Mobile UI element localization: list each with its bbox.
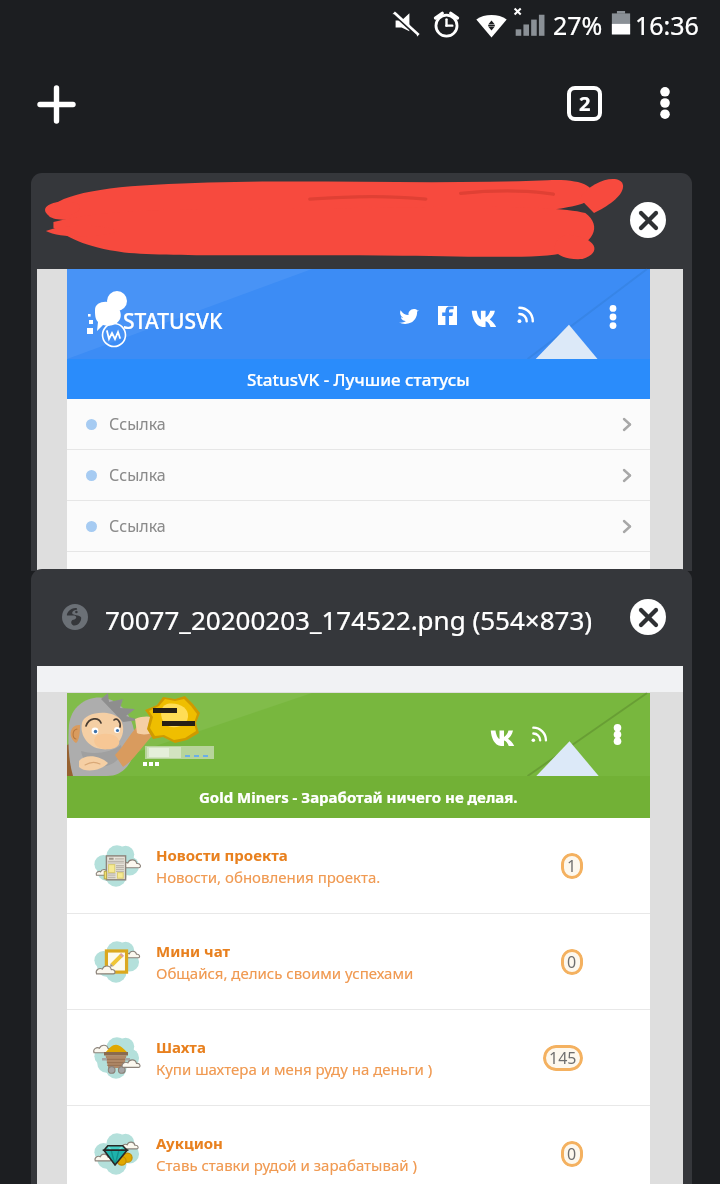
staticText: Общайся, делись своими успехами xyxy=(156,963,414,983)
staticText: StatusVK - Лучшие статусы xyxy=(247,368,470,391)
button[interactable]: Ссылка xyxy=(67,450,650,500)
button[interactable]: Мини чат xyxy=(67,914,650,1009)
staticText: 1 xyxy=(567,855,577,877)
staticText: Gold Miners - Заработай ничего не делая. xyxy=(199,787,518,807)
button[interactable]: Ссылка xyxy=(67,552,650,571)
staticText: 70077_20200203_174522.png (554×873) xyxy=(105,602,593,637)
staticText: Ссылка xyxy=(109,515,166,537)
button[interactable]: Новости проекта xyxy=(67,818,650,913)
button[interactable]: 70077_20200203_174522.png (554×873) xyxy=(31,569,692,1184)
button[interactable]: Ссылка xyxy=(67,501,650,551)
staticText: Новости проекта xyxy=(156,845,288,865)
staticText: 0 xyxy=(567,1143,577,1165)
button[interactable]: New tab xyxy=(30,78,82,130)
button[interactable]: Close tab xyxy=(625,197,671,243)
staticText: 0 xyxy=(567,951,577,973)
staticText: 2 xyxy=(579,90,591,117)
staticText: Новости, обновления проекта. xyxy=(156,867,381,887)
staticText: Ссылка xyxy=(109,566,166,571)
staticText: 27% xyxy=(553,8,603,42)
staticText: 145 xyxy=(549,1047,577,1069)
staticText: Мини чат xyxy=(156,941,231,961)
button[interactable]: Open tabs: 2 xyxy=(558,77,610,129)
staticText: Ссылка xyxy=(109,464,166,486)
button[interactable]: Шахта xyxy=(67,1010,650,1105)
button[interactable]: Аукцион xyxy=(67,1106,650,1184)
button[interactable]: Ссылка xyxy=(67,399,650,449)
staticText: 16:36 xyxy=(635,8,699,42)
button[interactable]: More options xyxy=(639,77,691,129)
staticText: STATUSVK xyxy=(123,307,223,336)
staticText: Ставь ставки рудой и зарабатывай ) xyxy=(156,1155,417,1175)
staticText: Шахта xyxy=(156,1037,206,1057)
button[interactable]: Close tab xyxy=(625,594,671,640)
staticText: Ссылка xyxy=(109,413,166,435)
staticText: Аукцион xyxy=(156,1133,223,1153)
button[interactable]: Close tab xyxy=(31,173,692,571)
staticText: Купи шахтера и меня руду на деньги ) xyxy=(156,1059,433,1079)
